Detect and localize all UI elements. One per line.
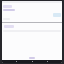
button[interactable] bbox=[3, 9, 15, 11]
button[interactable] bbox=[29, 57, 35, 59]
